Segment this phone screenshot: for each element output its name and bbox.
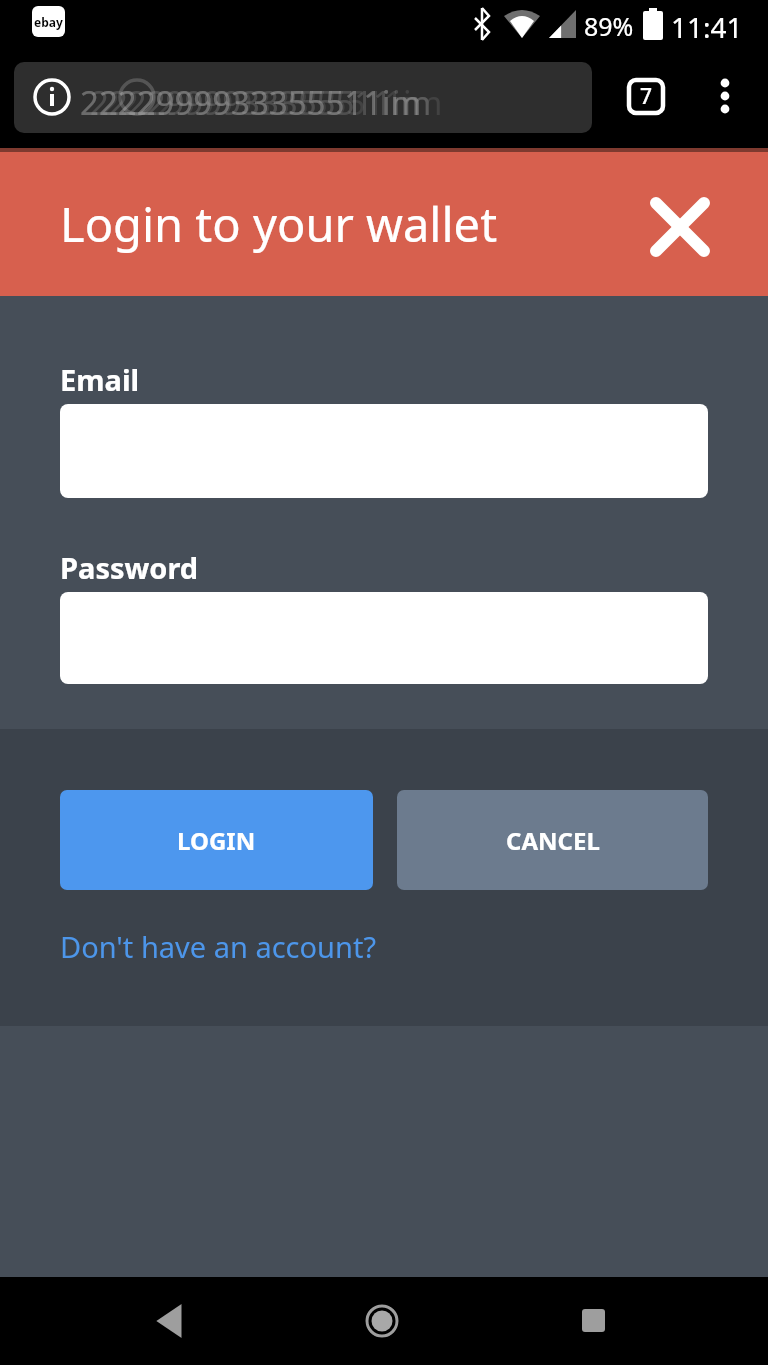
button[interactable] [582,1309,605,1332]
staticText: 2222999933355511im [90,80,432,125]
staticText: 11:41 [671,8,743,46]
button[interactable] [152,1304,188,1338]
button[interactable]: 7 [629,80,663,113]
button[interactable] [60,592,708,684]
staticText: Login to your wallet [60,192,498,256]
staticText: 2222999933355511im [80,80,422,125]
staticText: 7 [640,82,653,111]
button[interactable]: 2222999933355511im [14,62,592,133]
button[interactable]: LOGIN [60,790,373,890]
staticText: LOGIN [177,824,256,857]
button[interactable]: CANCEL [397,790,708,890]
button[interactable]: Don't have an account? [60,927,376,966]
staticText: 2222999933355511im [101,80,443,125]
staticText: Email [60,360,140,399]
staticText: Password [60,548,199,587]
staticText: CANCEL [506,824,600,857]
staticText: ebay [34,14,63,30]
button[interactable] [365,1304,399,1338]
button[interactable] [60,404,708,498]
staticText: 89% [584,9,634,43]
button[interactable] [650,197,710,257]
button[interactable] [713,78,737,118]
